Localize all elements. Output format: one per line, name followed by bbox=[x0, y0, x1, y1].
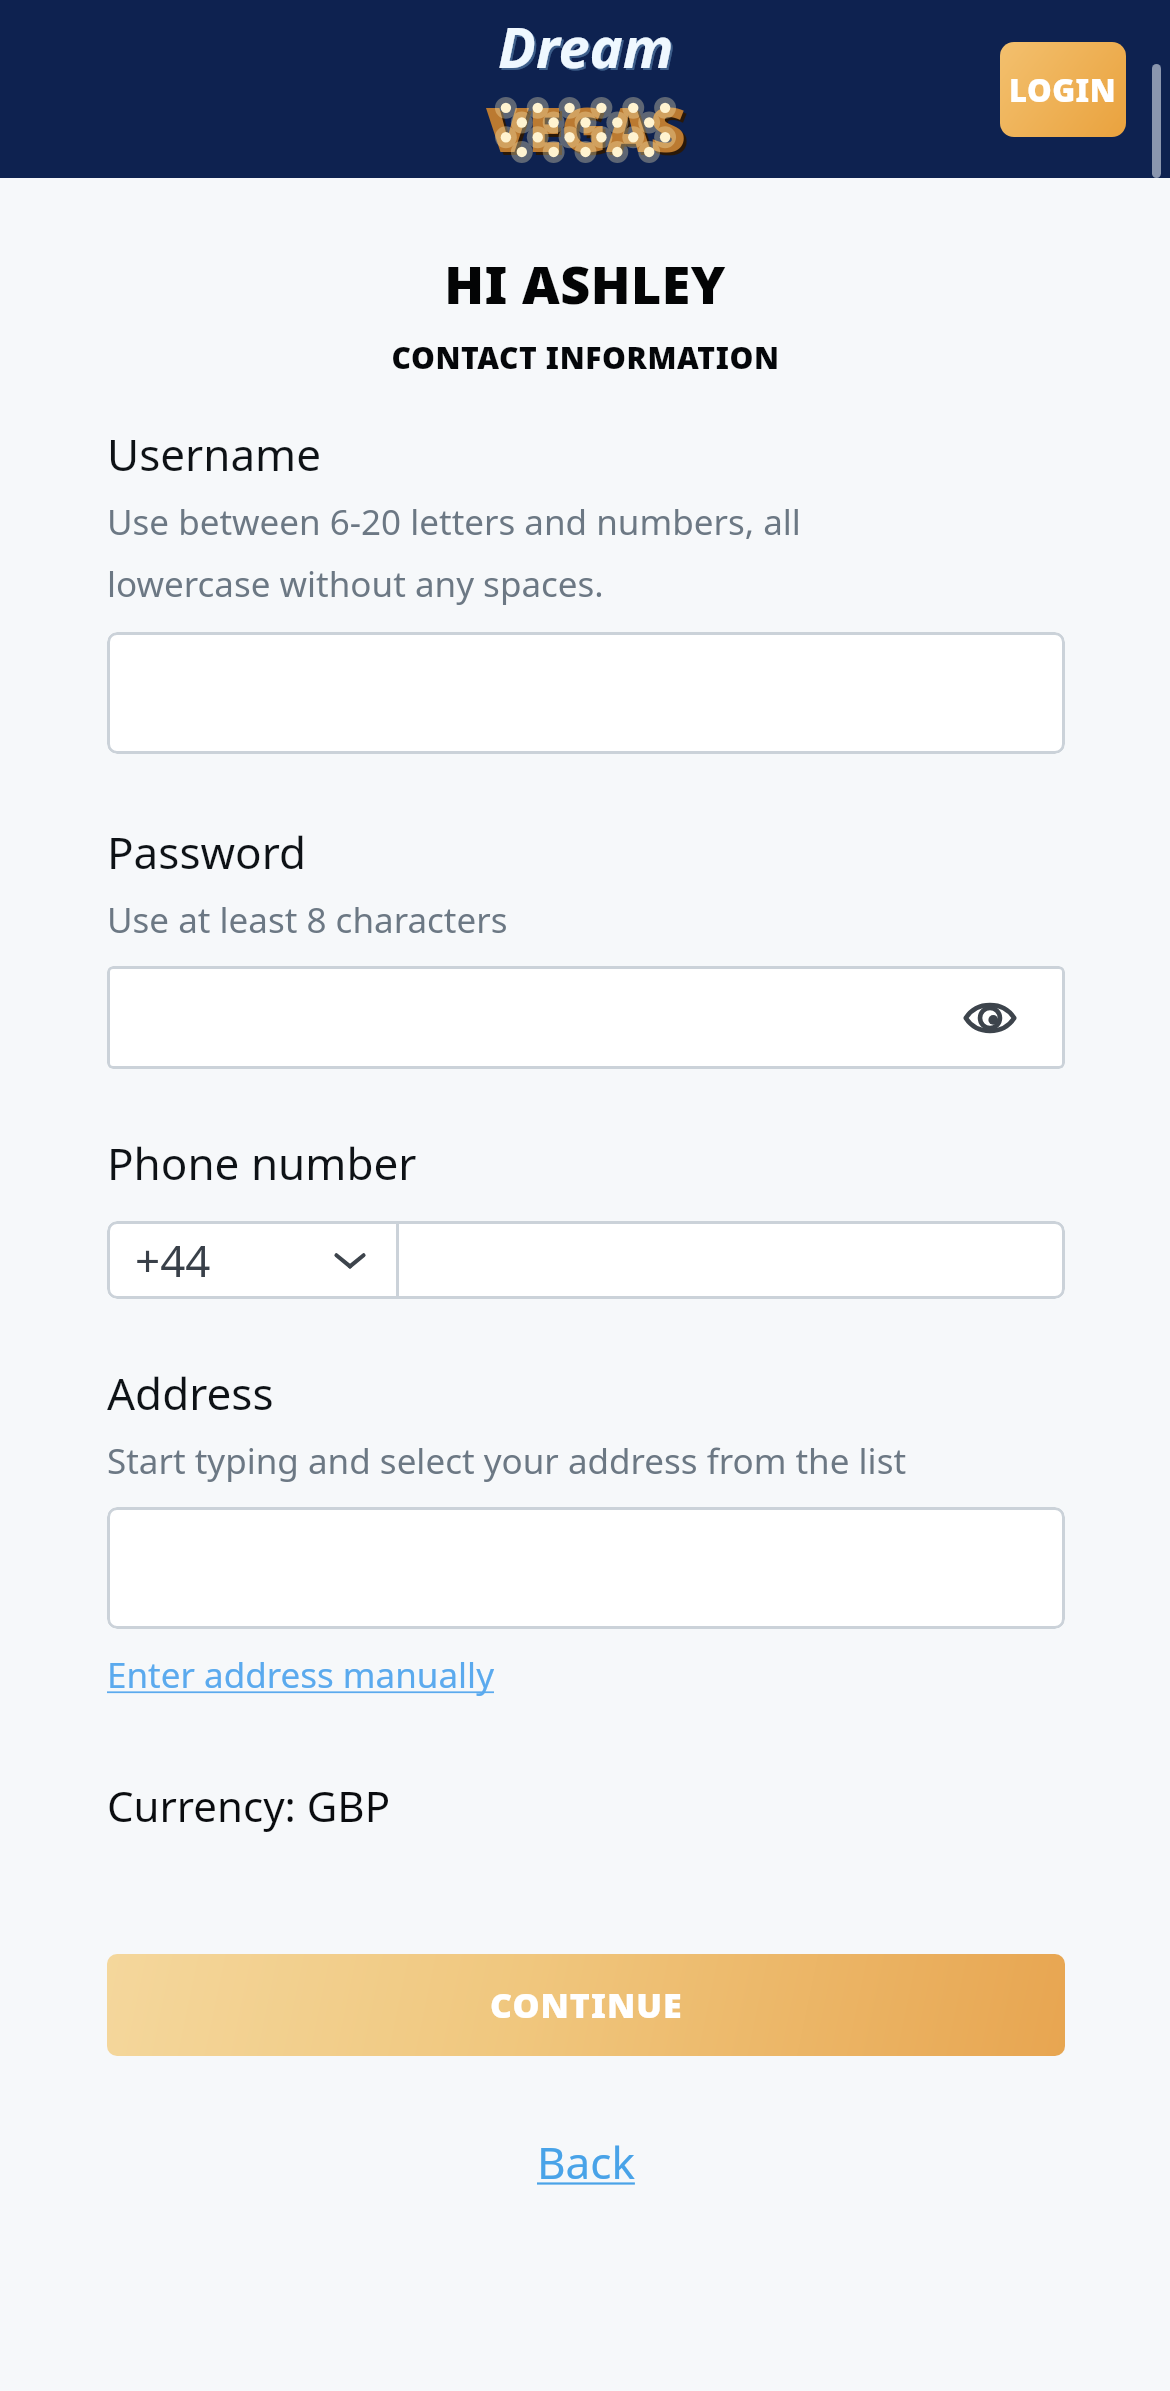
staticText: VEGAS bbox=[486, 86, 685, 170]
button[interactable] bbox=[107, 1507, 1065, 1629]
staticText: Back bbox=[537, 2132, 635, 2192]
staticText: +44 bbox=[135, 1230, 211, 1290]
button[interactable]: Enter address manually bbox=[107, 1651, 494, 1699]
staticText: VEGAS bbox=[489, 89, 688, 173]
staticText: LOGIN bbox=[1009, 69, 1117, 111]
staticText: Dream bbox=[500, 10, 676, 86]
button[interactable]: Back bbox=[537, 2132, 635, 2192]
button[interactable]: +44 bbox=[107, 1221, 396, 1299]
button[interactable]: Show password bbox=[961, 989, 1019, 1047]
staticText: Dream bbox=[498, 8, 674, 84]
staticText: Username bbox=[107, 424, 322, 484]
staticText: Address bbox=[107, 1363, 274, 1423]
staticText: Phone number bbox=[107, 1133, 417, 1193]
staticText: CONTINUE bbox=[490, 1982, 683, 2028]
staticText: lowercase without any spaces. bbox=[107, 560, 604, 608]
button[interactable]: Show password bbox=[107, 966, 1065, 1069]
button[interactable]: LOGIN bbox=[1000, 42, 1126, 137]
staticText: Password bbox=[107, 822, 307, 882]
staticText: Use between 6-20 letters and numbers, al… bbox=[107, 498, 801, 546]
staticText: Start typing and select your address fro… bbox=[107, 1437, 907, 1485]
button[interactable] bbox=[399, 1221, 1065, 1299]
staticText: CONTACT INFORMATION bbox=[391, 337, 780, 378]
other: Select country code bbox=[330, 1240, 370, 1280]
staticText: Currency: GBP bbox=[107, 1777, 391, 1834]
button[interactable] bbox=[107, 632, 1065, 754]
staticText: Use at least 8 characters bbox=[107, 896, 508, 944]
staticText: Enter address manually bbox=[107, 1651, 494, 1699]
button[interactable]: CONTINUE bbox=[107, 1954, 1065, 2056]
staticText: HI ASHLEY bbox=[444, 248, 726, 319]
